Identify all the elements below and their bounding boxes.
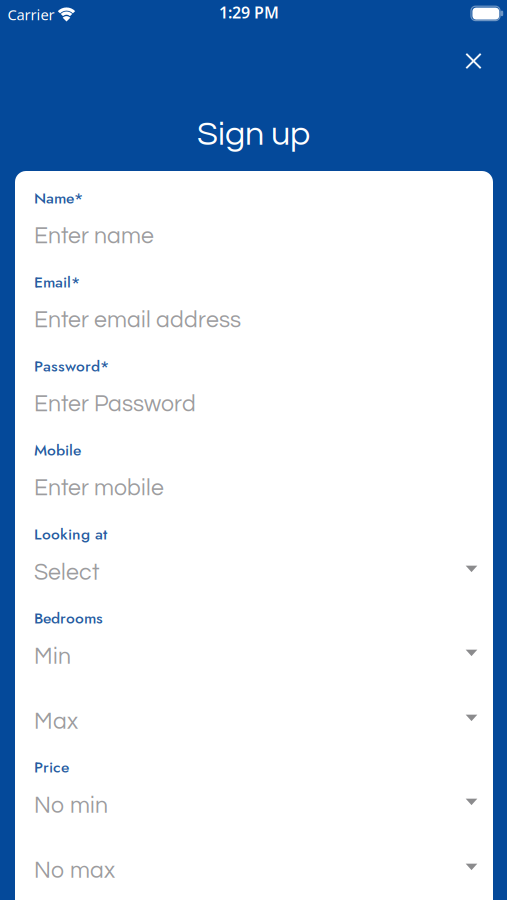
staticText: Email* (34, 271, 80, 293)
staticText: Carrier (7, 5, 54, 24)
button[interactable]: Bedrooms minimum (15, 638, 493, 680)
staticText: No min (34, 794, 108, 817)
staticText: Mobile (34, 439, 81, 461)
staticText: Sign up (197, 117, 310, 152)
staticText: Select (34, 561, 99, 584)
button[interactable]: Price maximum (15, 852, 493, 894)
staticText: Password* (34, 355, 109, 377)
staticText: Price (34, 756, 69, 778)
staticText: Enter name (34, 224, 154, 248)
staticText: Bedrooms (34, 607, 103, 629)
button[interactable]: Bedrooms maximum (15, 703, 493, 745)
staticText: Name* (34, 187, 83, 209)
button[interactable]: Looking at (15, 554, 493, 596)
staticText: Enter Password (34, 392, 196, 416)
staticText: Enter mobile (34, 476, 164, 500)
staticText: Min (34, 645, 71, 668)
staticText: No max (34, 859, 115, 882)
staticText: 1:29 PM (219, 2, 279, 23)
staticText: Looking at (34, 523, 107, 545)
staticText: Max (34, 710, 78, 733)
staticText: Enter email address (34, 308, 241, 332)
button[interactable]: Price minimum (15, 787, 493, 829)
button[interactable]: Close (456, 44, 491, 78)
